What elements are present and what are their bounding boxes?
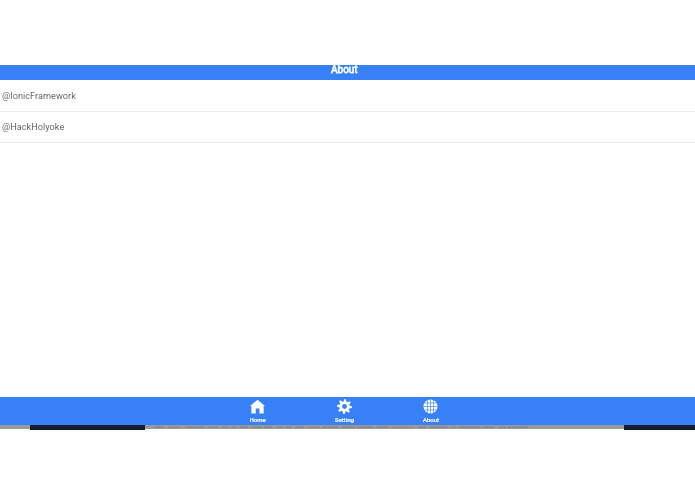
- staticText: About: [423, 416, 439, 423]
- staticText: About: [331, 64, 358, 76]
- button[interactable]: Setting: [323, 397, 366, 425]
- button[interactable]: @HackHolyoke: [0, 112, 695, 143]
- staticText: Home: [249, 416, 266, 423]
- other: About: [423, 399, 438, 414]
- button[interactable]: About: [409, 397, 452, 425]
- staticText: @IonicFramework: [2, 90, 76, 101]
- other: Home: [250, 399, 265, 414]
- staticText: @HackHolyoke: [2, 121, 65, 132]
- button[interactable]: @IonicFramework: [0, 81, 695, 112]
- other: Setting: [337, 399, 352, 414]
- staticText: Setting: [335, 416, 354, 423]
- button[interactable]: Home: [236, 397, 279, 425]
